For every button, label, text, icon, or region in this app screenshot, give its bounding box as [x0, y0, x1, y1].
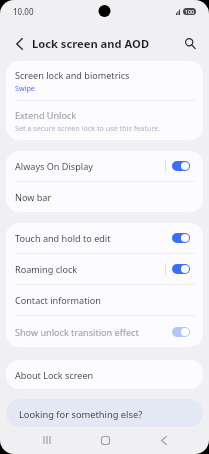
button[interactable]: Search: [180, 32, 203, 55]
button[interactable]: About Lock screen: [6, 360, 203, 389]
staticText: Lock screen and AOD: [32, 36, 150, 51]
button[interactable]: Touch and hold to edit: [6, 223, 203, 253]
button[interactable]: Show unlock transition effect: [6, 316, 203, 347]
staticText: 100: [185, 8, 194, 15]
staticText: Swipe: [15, 83, 35, 93]
staticText: Set a secure screen lock to use this fea…: [15, 123, 161, 133]
button[interactable]: Roaming clock: [6, 254, 203, 284]
button[interactable]: Show unlock transition effect: [172, 327, 190, 337]
button[interactable]: Extend Unlock: [6, 101, 203, 140]
staticText: Contact information: [15, 294, 101, 306]
staticText: Extend Unlock: [15, 109, 77, 121]
staticText: Always On Display: [15, 160, 93, 172]
button[interactable]: Contact information: [6, 285, 203, 315]
button[interactable]: Touch and hold to edit: [172, 233, 190, 243]
staticText: 10.00: [13, 6, 34, 17]
button[interactable]: Always On Display: [6, 151, 203, 181]
button[interactable]: Screen lock and biometrics: [6, 61, 203, 100]
button[interactable]: Back: [8, 32, 31, 55]
button[interactable]: Roaming clock: [172, 264, 190, 274]
button[interactable]: Home: [92, 427, 118, 453]
staticText: Looking for something else?: [19, 408, 143, 421]
staticText: Show unlock transition effect: [15, 326, 139, 338]
button[interactable]: Always On Display: [172, 161, 190, 171]
staticText: About Lock screen: [15, 369, 94, 381]
button[interactable]: Back: [151, 427, 177, 453]
staticText: Screen lock and biometrics: [15, 69, 130, 81]
button[interactable]: Recent apps: [34, 427, 60, 453]
staticText: Now bar: [15, 191, 52, 203]
button[interactable]: Looking for something else?: [6, 399, 203, 427]
button[interactable]: Now bar: [6, 182, 203, 212]
staticText: Touch and hold to edit: [15, 232, 111, 244]
staticText: Roaming clock: [15, 263, 78, 275]
